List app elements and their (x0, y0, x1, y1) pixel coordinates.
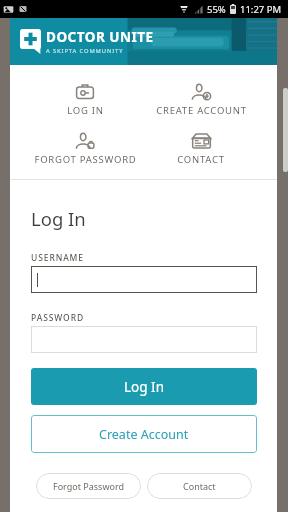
staticText: Create Account (99, 426, 189, 443)
staticText: Contact (183, 480, 216, 492)
staticText: CONTACT (177, 153, 225, 166)
staticText: Log In (31, 206, 86, 231)
staticText: FORGOT PASSWORD (34, 153, 137, 166)
staticText: PASSWORD (31, 312, 85, 324)
staticText: A SKIPTA COMMUNITY (46, 47, 124, 55)
button[interactable]: Create Account (31, 415, 257, 453)
button[interactable]: FORGOT PASSWORD (27, 133, 143, 166)
staticText: 11:27 PM (240, 3, 282, 16)
button[interactable]: Contact (147, 473, 252, 499)
staticText: Forgot Password (53, 480, 125, 492)
staticText: 55% (207, 3, 226, 16)
button[interactable]: CREATE ACCOUNT (143, 84, 259, 117)
staticText: Log In (124, 378, 164, 396)
button[interactable]: Forgot Password (36, 473, 141, 499)
staticText: USERNAME (31, 252, 84, 264)
staticText: CREATE ACCOUNT (156, 104, 247, 117)
button[interactable] (31, 326, 257, 353)
staticText: LOG IN (67, 104, 104, 117)
button[interactable]: CONTACT (143, 133, 259, 166)
staticText: DOCTOR UNITE (46, 28, 154, 46)
button[interactable]: Log In (31, 368, 257, 405)
button[interactable] (31, 266, 257, 293)
button[interactable]: LOG IN (27, 84, 143, 117)
